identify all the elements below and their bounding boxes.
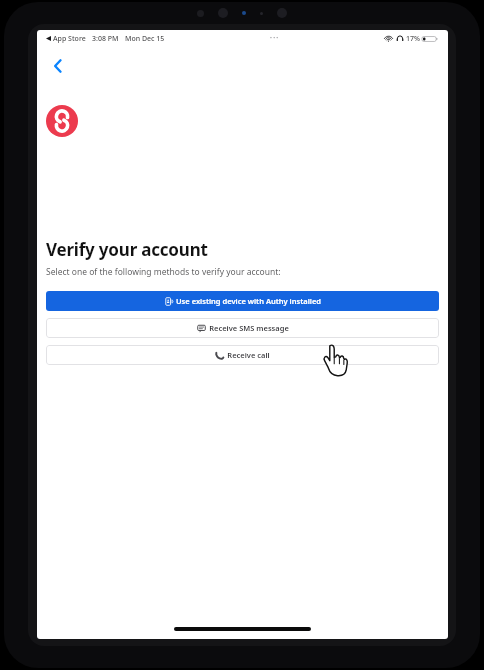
staticText: Receive call bbox=[227, 350, 270, 360]
button[interactable]: Receive call bbox=[46, 345, 439, 365]
button[interactable]: Receive SMS message bbox=[46, 318, 439, 338]
button[interactable]: Use existing device with Authy installed bbox=[46, 291, 439, 311]
staticText: 3:08 PM bbox=[92, 34, 119, 44]
staticText: Receive SMS message bbox=[209, 323, 289, 333]
button[interactable]: Back bbox=[41, 49, 75, 83]
staticText: Mon Dec 15 bbox=[125, 34, 165, 44]
staticText: 17% bbox=[406, 34, 420, 44]
staticText: App Store bbox=[53, 34, 86, 44]
staticText: • • • bbox=[270, 35, 279, 42]
staticText: Verify your account bbox=[46, 238, 208, 261]
staticText: Select one of the following methods to v… bbox=[46, 266, 281, 278]
staticText: Use existing device with Authy installed bbox=[176, 296, 321, 306]
